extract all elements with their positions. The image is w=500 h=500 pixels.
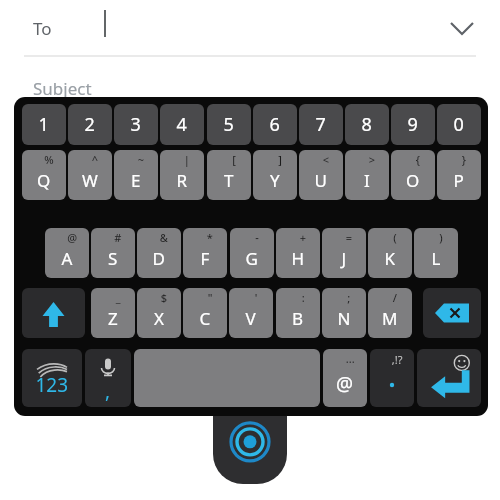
button[interactable] xyxy=(437,104,481,145)
button[interactable] xyxy=(368,288,412,338)
button[interactable] xyxy=(22,104,66,145)
button[interactable] xyxy=(323,349,367,407)
button[interactable]: Shift xyxy=(22,288,85,338)
button[interactable] xyxy=(276,228,320,278)
button[interactable] xyxy=(276,288,320,338)
button[interactable]: Space xyxy=(134,349,320,407)
button[interactable] xyxy=(322,228,366,278)
button[interactable] xyxy=(91,288,135,338)
button[interactable] xyxy=(230,228,274,278)
button[interactable] xyxy=(68,104,112,145)
button[interactable] xyxy=(0,0,500,57)
button[interactable] xyxy=(207,104,251,145)
button[interactable] xyxy=(299,150,343,200)
button[interactable] xyxy=(91,228,135,278)
button[interactable] xyxy=(391,150,435,200)
button[interactable] xyxy=(137,228,181,278)
button[interactable]: Backspace xyxy=(423,288,481,338)
button[interactable] xyxy=(437,150,481,200)
button[interactable]: Voice assistant xyxy=(213,416,287,484)
button[interactable] xyxy=(345,150,389,200)
button[interactable]: Expand recipients xyxy=(440,6,484,50)
button[interactable] xyxy=(183,228,227,278)
button[interactable] xyxy=(114,104,158,145)
button[interactable] xyxy=(229,288,273,338)
button[interactable] xyxy=(114,150,158,200)
button[interactable] xyxy=(183,288,227,338)
button[interactable] xyxy=(253,104,297,145)
button[interactable] xyxy=(345,104,389,145)
button[interactable] xyxy=(160,104,204,145)
button[interactable]: Comma / voice xyxy=(85,349,131,407)
button[interactable] xyxy=(414,228,458,278)
button[interactable]: Period xyxy=(370,349,414,407)
button[interactable] xyxy=(22,150,66,200)
button[interactable] xyxy=(160,150,204,200)
button[interactable] xyxy=(253,150,297,200)
button[interactable] xyxy=(207,150,251,200)
button[interactable]: Numbers xyxy=(22,349,82,407)
button[interactable] xyxy=(137,288,181,338)
button[interactable] xyxy=(68,150,112,200)
button[interactable] xyxy=(45,228,89,278)
button[interactable] xyxy=(299,104,343,145)
button[interactable] xyxy=(368,228,412,278)
button[interactable] xyxy=(391,104,435,145)
button[interactable]: Enter xyxy=(417,349,481,407)
button[interactable] xyxy=(322,288,366,338)
